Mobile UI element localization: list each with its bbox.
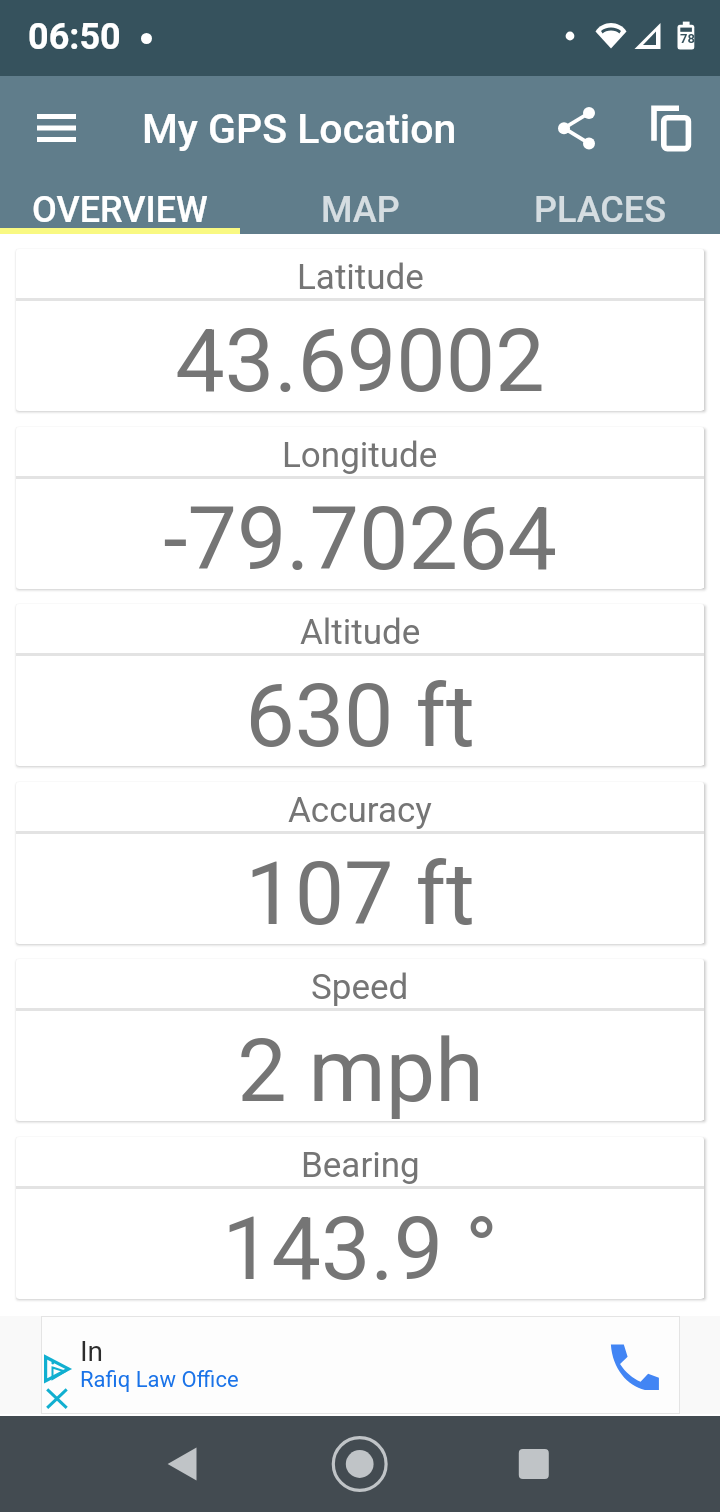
button[interactable]: Copy	[643, 76, 709, 180]
staticText: 2 mph	[237, 1019, 484, 1121]
button[interactable]: Recents	[498, 1428, 570, 1500]
button[interactable]: Back	[146, 1428, 218, 1500]
staticText: 143.9 °	[222, 1197, 498, 1299]
button[interactable]: Share	[548, 76, 614, 180]
staticText: My GPS Location	[142, 105, 457, 153]
staticText: PLACES	[534, 189, 666, 231]
button[interactable]: Menu	[26, 98, 86, 158]
staticText: 78	[680, 31, 695, 46]
button[interactable]: PLACES	[480, 180, 720, 234]
staticText: Altitude	[300, 612, 421, 653]
button[interactable]: Longitude	[16, 427, 704, 589]
staticText: Bearing	[301, 1145, 420, 1186]
staticText: 107 ft	[245, 842, 475, 944]
staticText: MAP	[321, 189, 400, 231]
staticText: 43.69002	[175, 309, 545, 411]
button[interactable]: MAP	[240, 180, 480, 234]
staticText: Rafiq Law Office	[80, 1367, 239, 1393]
button[interactable]: Accuracy	[16, 782, 704, 944]
staticText: -79.70264	[163, 487, 557, 589]
button[interactable]: In	[41, 1316, 680, 1414]
staticText: OVERVIEW	[32, 189, 208, 231]
staticText: In	[80, 1335, 104, 1368]
button[interactable]: Home	[324, 1428, 396, 1500]
button[interactable]: Altitude	[16, 604, 704, 766]
staticText: 630 ft	[245, 664, 475, 766]
staticText: Speed	[311, 967, 409, 1008]
staticText: 06:50	[28, 16, 121, 58]
staticText: Accuracy	[288, 790, 432, 831]
button[interactable]: Speed	[16, 959, 704, 1121]
button[interactable]: OVERVIEW	[0, 180, 240, 234]
staticText: Latitude	[297, 257, 424, 298]
button[interactable]: Bearing	[16, 1137, 704, 1299]
staticText: Longitude	[282, 435, 438, 476]
button[interactable]: Latitude	[16, 249, 704, 411]
